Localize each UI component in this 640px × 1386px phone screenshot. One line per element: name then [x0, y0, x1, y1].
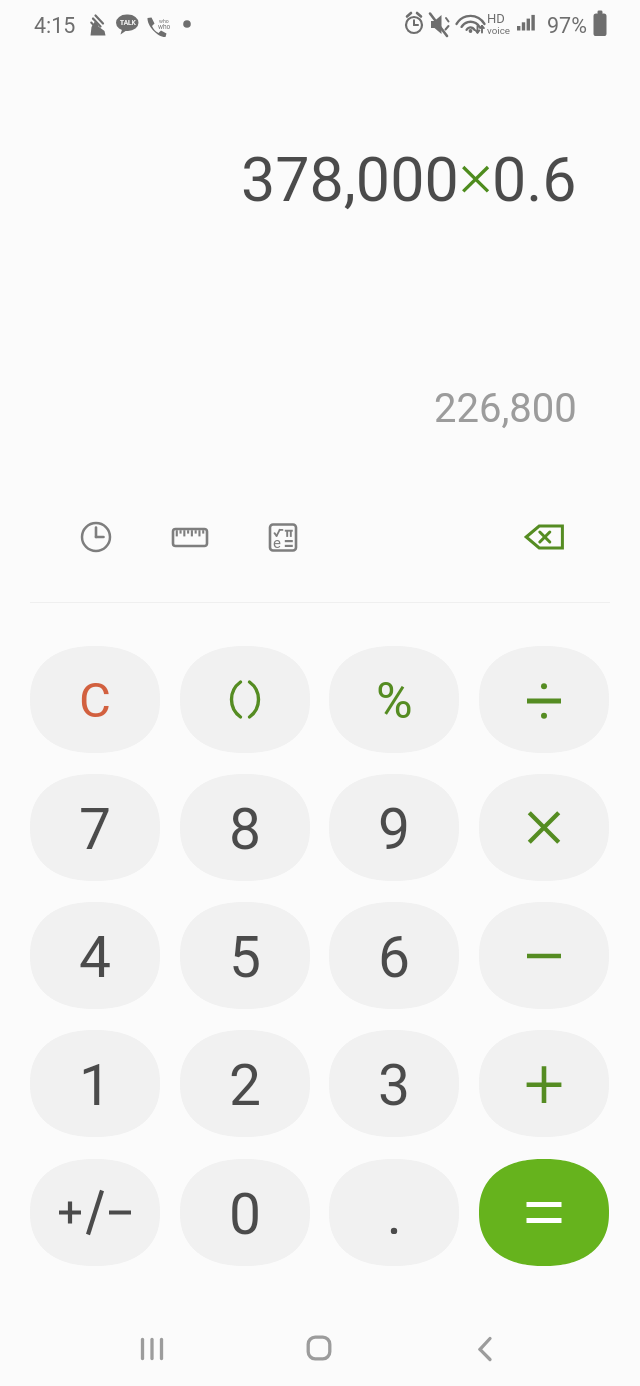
button[interactable]: Clear — [30, 646, 160, 753]
staticText: 1 — [79, 1052, 112, 1119]
button[interactable]: 6 — [329, 902, 459, 1009]
staticText: 8 — [229, 796, 262, 863]
staticText: 4:15 — [34, 13, 76, 38]
button[interactable]: 9 — [329, 774, 459, 881]
button[interactable]: Minus — [479, 902, 609, 1009]
button[interactable]: Scientific calculator — [249, 503, 317, 571]
button[interactable]: Multiply — [479, 774, 609, 881]
staticText: 97% — [547, 13, 587, 38]
button[interactable]: 0 — [180, 1159, 310, 1266]
button[interactable]: Backspace — [510, 503, 578, 571]
staticText: 7 — [79, 796, 112, 863]
staticText: 2 — [229, 1052, 262, 1119]
button[interactable]: Divide — [479, 646, 609, 753]
button[interactable]: 2 — [180, 1030, 310, 1137]
staticText: C — [79, 672, 111, 729]
button[interactable]: History — [62, 503, 130, 571]
button[interactable]: 4 — [30, 902, 160, 1009]
button[interactable]: Equals — [479, 1159, 609, 1266]
button[interactable]: Plus — [479, 1030, 609, 1137]
button[interactable]: 3 — [329, 1030, 459, 1137]
staticText: HD — [487, 11, 505, 26]
staticText: 4 — [79, 924, 112, 991]
button[interactable]: Plus minus — [30, 1159, 160, 1266]
button[interactable]: 5 — [180, 902, 310, 1009]
staticText: 9 — [378, 796, 411, 863]
staticText: e — [273, 534, 281, 552]
staticText: 5 — [229, 924, 262, 991]
button[interactable]: Decimal point — [329, 1159, 459, 1266]
staticText: who — [158, 23, 171, 31]
staticText: 0 — [229, 1181, 262, 1248]
staticText: 226,800 — [434, 385, 577, 432]
staticText: voice — [487, 25, 510, 36]
staticText: TALK — [120, 19, 136, 27]
staticText: 378,000 — [241, 144, 459, 215]
staticText: 3 — [378, 1052, 411, 1119]
staticText: who — [159, 18, 169, 24]
button[interactable]: 7 — [30, 774, 160, 881]
button[interactable]: Parentheses — [180, 646, 310, 753]
button[interactable]: Unit converter — [155, 503, 223, 571]
staticText: % — [376, 672, 413, 731]
button[interactable]: 8 — [180, 774, 310, 881]
button[interactable]: Recents — [112, 1309, 192, 1386]
button[interactable]: Percent — [329, 646, 459, 753]
button[interactable]: 1 — [30, 1030, 160, 1137]
staticText: 6 — [378, 924, 411, 991]
staticText: × — [459, 144, 492, 215]
button[interactable]: Home — [279, 1309, 359, 1386]
staticText: 0.6 — [492, 144, 577, 215]
button[interactable]: Back — [446, 1309, 526, 1386]
